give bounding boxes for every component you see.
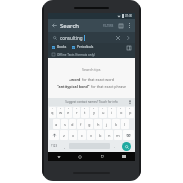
button[interactable]: i bbox=[108, 107, 116, 118]
button[interactable]: Voice input bbox=[127, 99, 133, 105]
staticText: . bbox=[114, 144, 116, 149]
staticText: 9 bbox=[120, 107, 122, 110]
staticText: t bbox=[84, 110, 86, 115]
staticText: f bbox=[80, 122, 82, 127]
staticText: x bbox=[72, 133, 75, 138]
button[interactable]: Back bbox=[50, 21, 59, 30]
button[interactable]: p bbox=[126, 107, 134, 118]
staticText: z bbox=[63, 133, 65, 138]
button[interactable]: n bbox=[105, 130, 113, 140]
button[interactable]: Search bbox=[122, 142, 131, 151]
staticText: 5 bbox=[84, 107, 86, 110]
button[interactable]: Search bbox=[51, 34, 58, 41]
staticText: 3 bbox=[68, 107, 70, 110]
button[interactable]: q bbox=[49, 107, 56, 118]
button[interactable]: Clear query bbox=[114, 34, 122, 42]
button[interactable]: b bbox=[96, 130, 104, 140]
button[interactable]: h bbox=[94, 119, 102, 129]
button[interactable]: y bbox=[90, 107, 98, 118]
button[interactable]: l bbox=[121, 119, 129, 129]
button[interactable]: More options bbox=[126, 22, 133, 29]
button[interactable]: Backspace bbox=[123, 130, 134, 140]
staticText: Search tips bbox=[82, 67, 101, 72]
button[interactable]: r bbox=[73, 107, 80, 118]
staticText: +word bbox=[69, 77, 81, 82]
button[interactable]: Recents bbox=[91, 152, 113, 161]
staticText: n bbox=[108, 133, 111, 138]
staticText: d bbox=[71, 122, 74, 127]
staticText: 8 bbox=[111, 107, 113, 110]
staticText: 2 bbox=[60, 107, 62, 110]
button[interactable]: Toggle filter bbox=[51, 52, 56, 57]
staticText: a bbox=[55, 122, 58, 127]
button[interactable]: m bbox=[114, 130, 122, 140]
button[interactable]: f bbox=[77, 119, 84, 129]
staticText: FILTERS bbox=[103, 24, 114, 28]
staticText: , bbox=[64, 144, 66, 149]
staticText: ?123 bbox=[51, 144, 58, 148]
button[interactable]: x bbox=[69, 130, 77, 140]
button[interactable]: o bbox=[117, 107, 125, 118]
button[interactable]: Shift bbox=[49, 130, 59, 140]
staticText: Periodicals bbox=[77, 45, 94, 49]
button[interactable]: , bbox=[61, 141, 68, 151]
staticText: y bbox=[93, 110, 96, 115]
staticText: k bbox=[115, 122, 118, 127]
button[interactable]: j bbox=[103, 119, 111, 129]
staticText: for that exact phrase bbox=[90, 84, 126, 89]
staticText: w bbox=[59, 110, 63, 115]
staticText: o bbox=[120, 110, 123, 115]
button[interactable]: c bbox=[78, 130, 86, 140]
staticText: e bbox=[67, 110, 70, 115]
staticText: b bbox=[99, 133, 102, 138]
staticText: consulting bbox=[60, 35, 83, 41]
button[interactable]: t bbox=[81, 107, 89, 118]
staticText: p bbox=[129, 110, 132, 115]
staticText: s bbox=[64, 122, 66, 127]
button[interactable]: Toggle filter bbox=[71, 45, 76, 50]
button[interactable]: d bbox=[69, 119, 76, 129]
staticText: for that exact word bbox=[81, 77, 114, 82]
staticText: l bbox=[124, 122, 126, 127]
staticText: c bbox=[81, 133, 83, 138]
staticText: Suggest contact names? Touch for info bbox=[65, 100, 118, 104]
staticText: Books bbox=[57, 45, 67, 49]
staticText: g bbox=[88, 122, 91, 127]
staticText: j bbox=[106, 122, 108, 127]
button[interactable]: g bbox=[85, 119, 93, 129]
staticText: m bbox=[116, 133, 120, 138]
staticText: 7 bbox=[102, 107, 104, 110]
button[interactable]: Grid view bbox=[117, 22, 124, 29]
staticText: 6 bbox=[93, 107, 95, 110]
staticText: 4 bbox=[76, 107, 78, 110]
button[interactable]: a bbox=[53, 119, 60, 129]
button[interactable]: Home bbox=[69, 152, 91, 161]
staticText: Offline Texts (formats only) bbox=[57, 53, 95, 57]
staticText: v bbox=[90, 133, 93, 138]
staticText: q bbox=[51, 110, 54, 115]
staticText: h bbox=[97, 122, 100, 127]
staticText: 0 bbox=[129, 107, 131, 110]
button[interactable]: s bbox=[61, 119, 68, 129]
button[interactable]: k bbox=[112, 119, 120, 129]
button[interactable]: ?123 bbox=[49, 141, 60, 151]
button[interactable]: Change layout bbox=[125, 44, 132, 51]
button[interactable]: Hide keyboard bbox=[113, 152, 135, 161]
button[interactable]: Submit search bbox=[124, 34, 132, 42]
button[interactable]: v bbox=[87, 130, 95, 140]
staticText: u bbox=[102, 110, 105, 115]
staticText: i bbox=[111, 110, 113, 115]
staticText: r bbox=[76, 110, 78, 115]
button[interactable]: u bbox=[99, 107, 107, 118]
button[interactable]: e bbox=[65, 107, 72, 118]
staticText: "antitypical bond" bbox=[57, 84, 90, 89]
button[interactable]: w bbox=[57, 107, 64, 118]
button[interactable]: Back bbox=[48, 152, 69, 161]
staticText: Search bbox=[60, 22, 79, 30]
staticText: 07:00 bbox=[125, 14, 133, 18]
button[interactable]: Toggle filter bbox=[51, 45, 56, 50]
button[interactable]: z bbox=[60, 130, 68, 140]
staticText: 1 bbox=[52, 107, 54, 110]
